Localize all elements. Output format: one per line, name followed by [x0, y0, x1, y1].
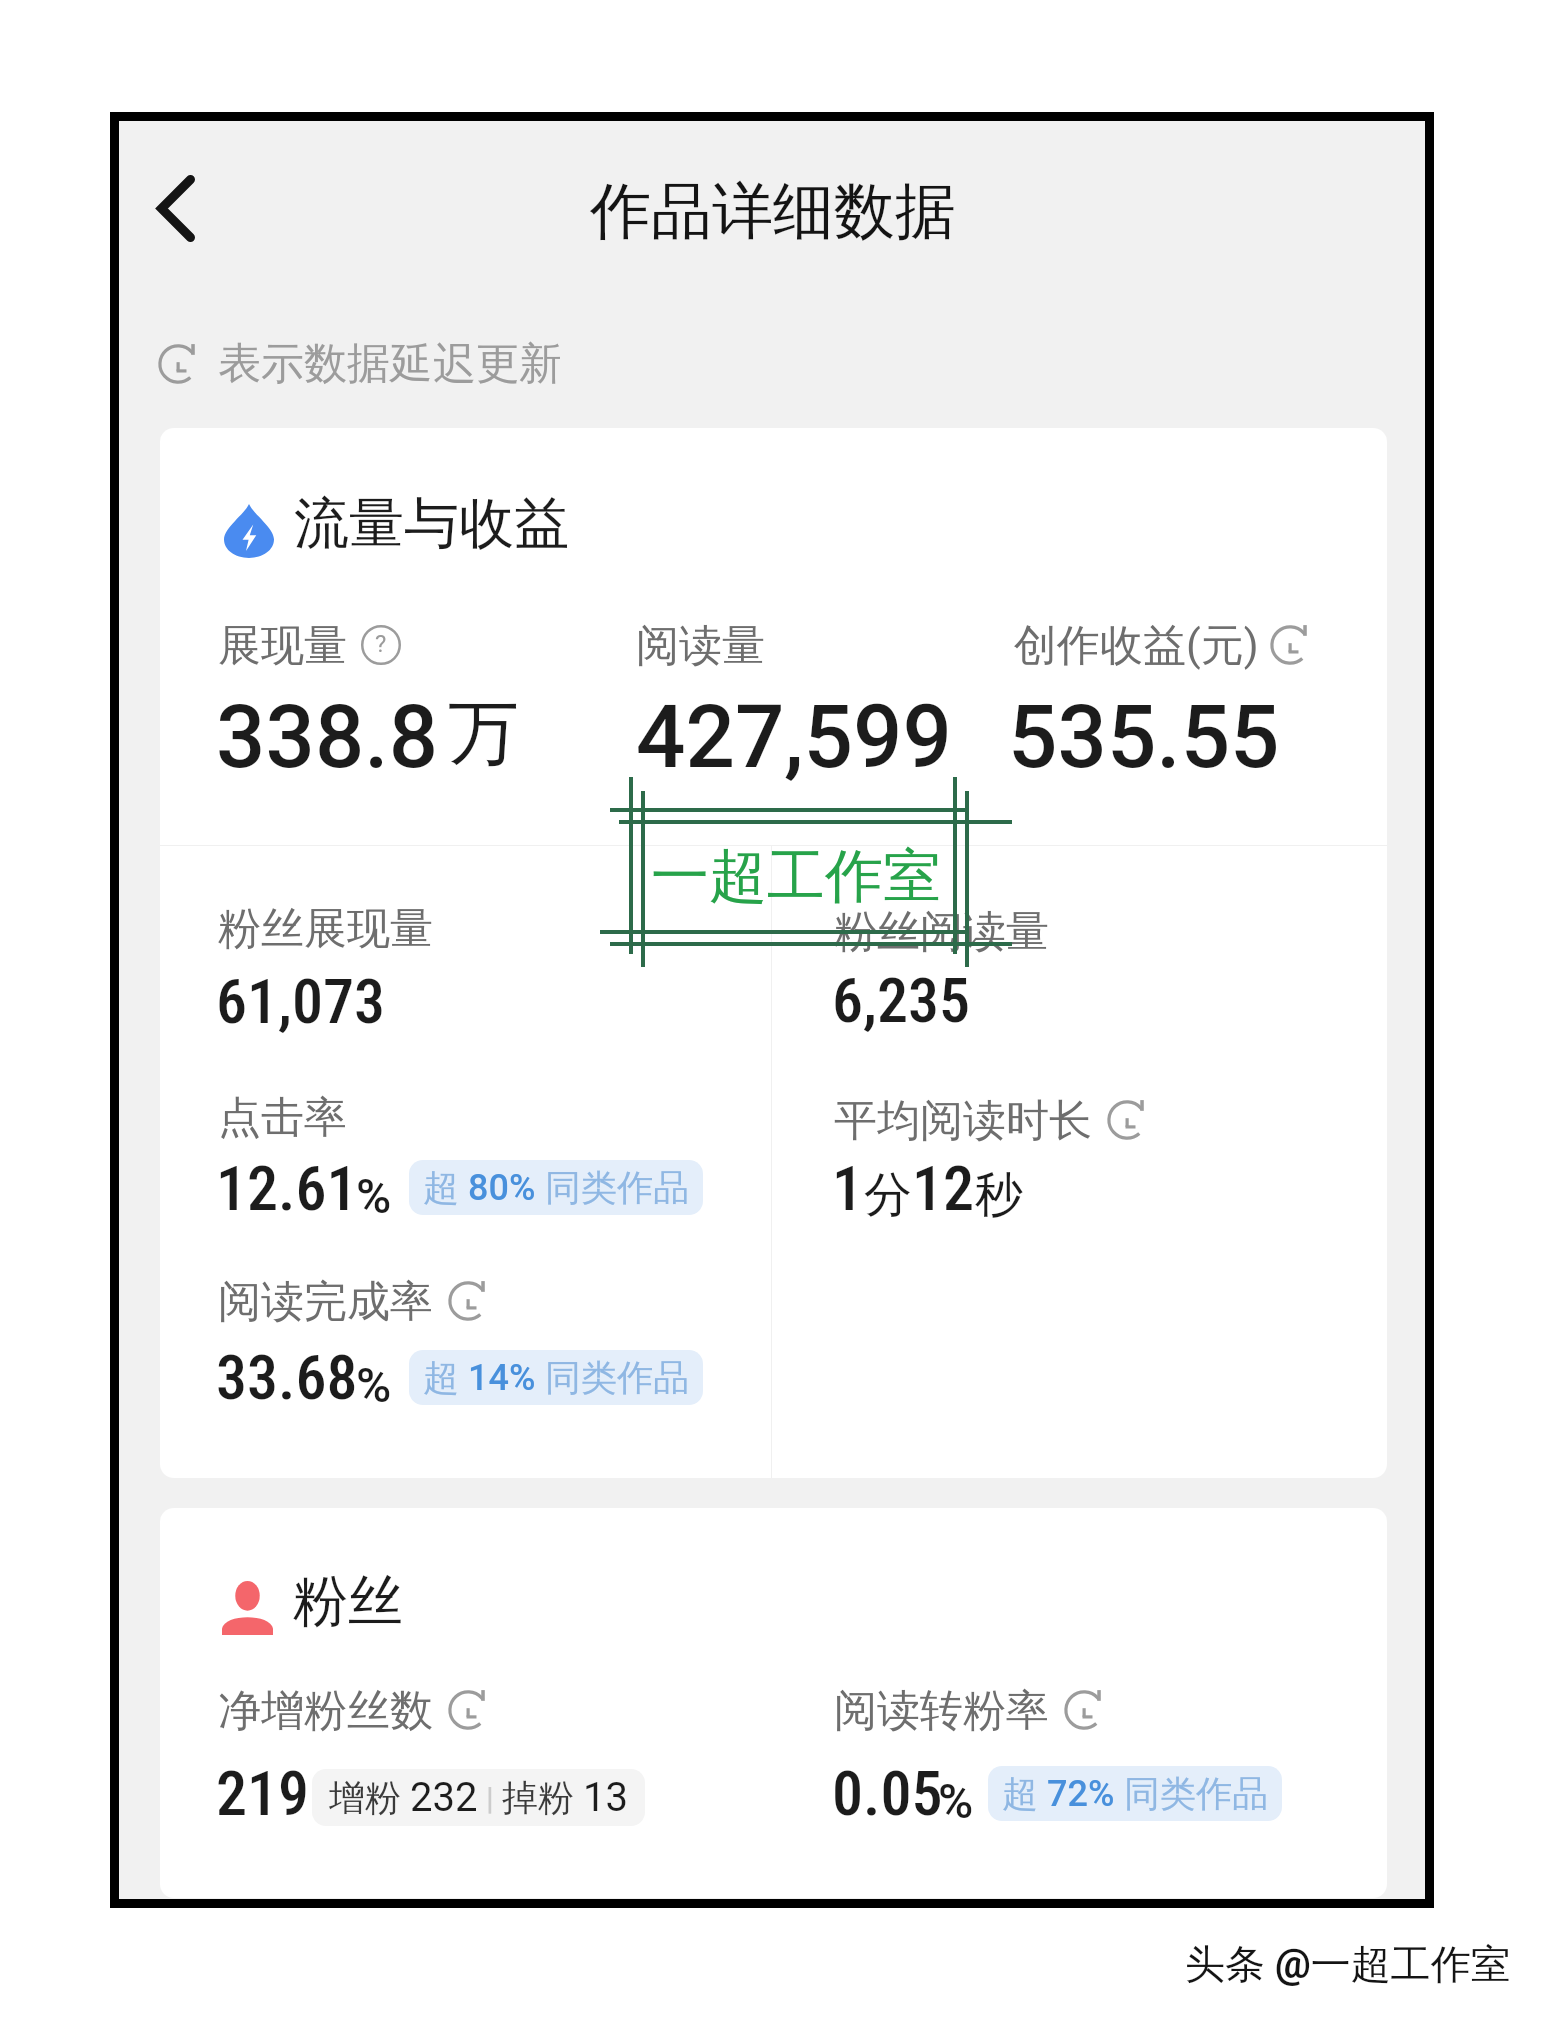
button[interactable]: Delayed data [449, 1281, 489, 1321]
staticText: 万 [448, 689, 519, 778]
button[interactable]: What is this? [361, 625, 401, 665]
staticText: 6,235 [832, 964, 971, 1037]
button[interactable]: Delayed data [449, 1690, 489, 1730]
staticText: 一超工作室 [651, 840, 941, 913]
staticText: 同类作品 [536, 1165, 689, 1210]
staticText: 超 [1002, 1771, 1047, 1816]
staticText: % [356, 1168, 392, 1224]
staticText: 1 [832, 1152, 864, 1225]
staticText: ? [375, 630, 387, 658]
staticText: 分 [864, 1165, 912, 1225]
button[interactable]: 超 [1002, 1771, 1268, 1816]
staticText: 阅读转粉率 [834, 1684, 1049, 1738]
staticText: % [938, 1773, 974, 1829]
button[interactable]: Back [131, 153, 221, 263]
staticText: 平均阅读时长 [834, 1094, 1092, 1148]
staticText: 12.61 [216, 1152, 358, 1225]
staticText: 展现量 [218, 619, 347, 673]
staticText: | [478, 1779, 502, 1817]
button[interactable]: Delayed data [1271, 625, 1311, 665]
staticText: 作品详细数据 [590, 173, 956, 250]
staticText: 粉丝阅读量 [834, 905, 1049, 959]
staticText: 表示数据延迟更新 [218, 337, 562, 391]
staticText: 增粉 [329, 1775, 410, 1820]
staticText: 13 [583, 1774, 628, 1821]
staticText: 12 [912, 1152, 975, 1225]
staticText: 338.8 [216, 686, 439, 788]
staticText: 粉丝 [293, 1567, 403, 1636]
staticText: 秒 [975, 1165, 1023, 1225]
staticText: 33.68 [216, 1341, 358, 1414]
button[interactable]: 增粉 [329, 1774, 628, 1821]
staticText: 粉丝展现量 [218, 902, 433, 956]
staticText: 0.05 [832, 1757, 943, 1830]
staticText: 219 [216, 1757, 310, 1830]
staticText: 72% [1047, 1773, 1115, 1815]
button[interactable]: Delayed data [1108, 1100, 1148, 1140]
button[interactable]: 超 [423, 1165, 689, 1210]
staticText: 点击率 [218, 1091, 347, 1145]
staticText: 头条 @一超工作室 [1185, 1939, 1511, 1989]
staticText: 流量与收益 [294, 489, 569, 558]
button[interactable]: 超 [423, 1355, 689, 1400]
staticText: 同类作品 [1115, 1771, 1268, 1816]
staticText: 427,599 [636, 686, 952, 788]
staticText: 超 [423, 1355, 468, 1400]
staticText: 80% [468, 1167, 536, 1209]
staticText: 14% [468, 1357, 536, 1399]
staticText: 535.55 [1008, 686, 1280, 788]
staticText: 净增粉丝数 [218, 1684, 433, 1738]
staticText: 同类作品 [536, 1355, 689, 1400]
staticText: 61,073 [216, 965, 386, 1038]
staticText: % [356, 1357, 392, 1413]
staticText: 超 [423, 1165, 468, 1210]
staticText: 阅读完成率 [218, 1275, 433, 1329]
staticText: 232 [410, 1774, 478, 1821]
staticText: 掉粉 [502, 1775, 583, 1820]
staticText: 创作收益(元) [1014, 619, 1259, 673]
button[interactable]: Delayed data [1065, 1690, 1105, 1730]
staticText: 阅读量 [636, 619, 765, 673]
